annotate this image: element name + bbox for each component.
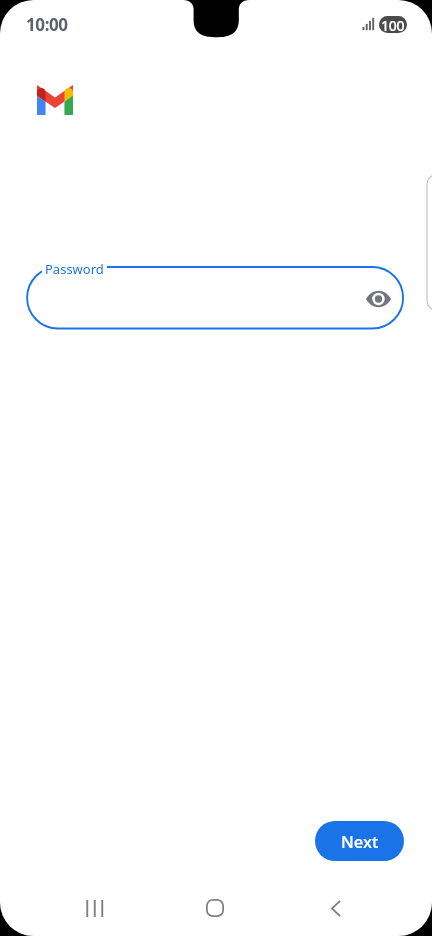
button[interactable]: Back	[312, 884, 360, 932]
button[interactable]: Recent apps	[71, 884, 119, 932]
staticText: 100	[381, 16, 405, 33]
staticText: 10:00	[26, 13, 68, 36]
button[interactable]: Show password	[360, 280, 397, 317]
button[interactable]: Home	[191, 884, 239, 932]
staticText: Next	[341, 830, 379, 852]
staticText: Password	[45, 260, 104, 278]
button[interactable]: Password	[45, 260, 104, 278]
button[interactable]: Next	[315, 821, 404, 861]
